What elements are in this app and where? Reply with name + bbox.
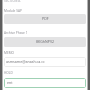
staticText: MEMO	[4, 51, 15, 55]
staticText: HOLD	[4, 71, 13, 75]
staticText: 8KGhNPV2	[36, 39, 55, 44]
staticText: PDF	[42, 16, 49, 21]
button[interactable]: ent	[4, 78, 86, 88]
button[interactable]: asmsame@anash.ca.cc	[4, 57, 86, 67]
staticText: asmsame@anash.ca.cc	[6, 59, 45, 64]
staticText: SECTION A	[4, 0, 21, 3]
button[interactable]: 8KGhNPV2	[4, 37, 86, 47]
staticText: ent	[7, 80, 13, 85]
button[interactable]: PDF	[4, 14, 86, 24]
staticText: Archive Phase 1	[4, 31, 28, 35]
staticText: Module SAP	[4, 9, 22, 13]
